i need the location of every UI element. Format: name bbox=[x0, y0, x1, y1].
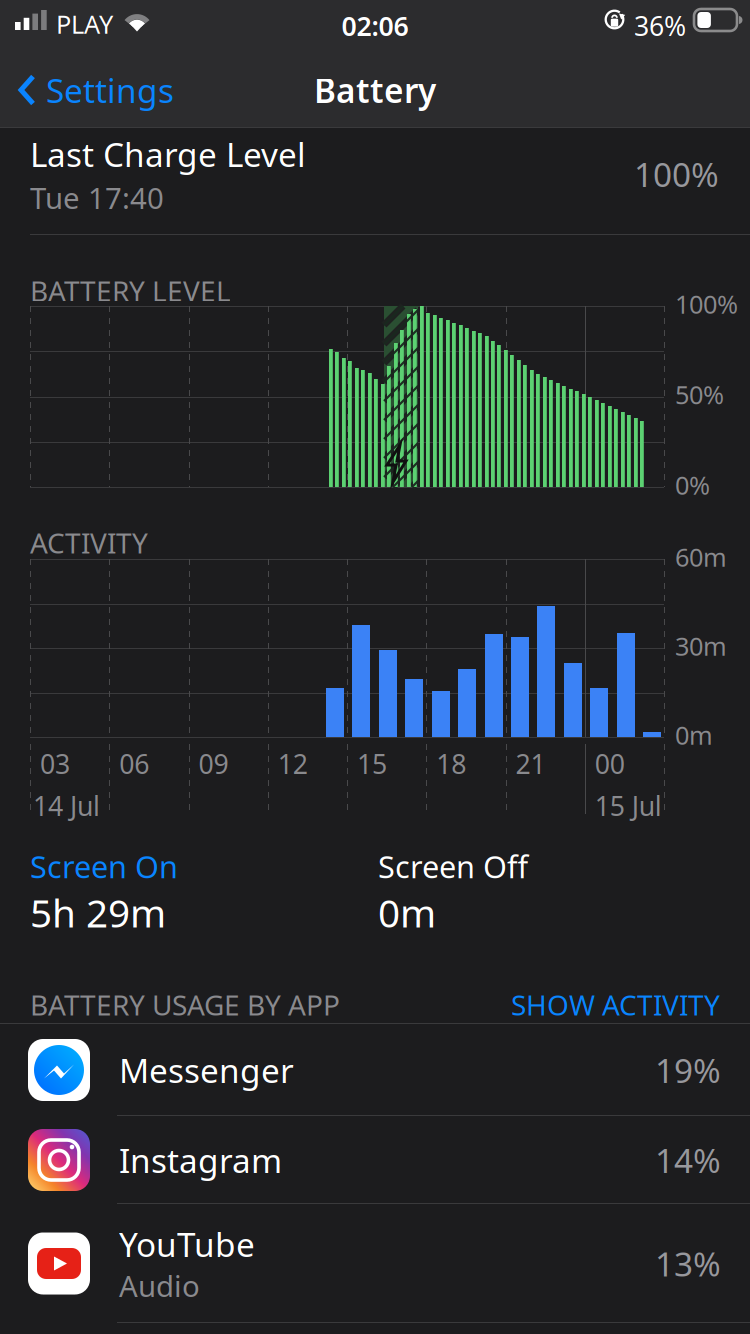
staticText: 50% bbox=[675, 377, 724, 411]
staticText: 06 bbox=[119, 746, 149, 781]
button[interactable]: SHOW ACTIVITY bbox=[511, 986, 720, 1023]
staticText: Screen Off bbox=[378, 846, 528, 887]
button[interactable]: Instagram bbox=[0, 1116, 750, 1204]
staticText: Last Charge Level bbox=[30, 132, 306, 176]
staticText: 15 Jul bbox=[595, 788, 662, 823]
staticText: BATTERY LEVEL bbox=[30, 272, 231, 309]
staticText: BATTERY USAGE BY APP bbox=[30, 986, 340, 1023]
staticText: 21 bbox=[515, 746, 545, 781]
staticText: SHOW ACTIVITY bbox=[511, 986, 720, 1023]
staticText: 36% bbox=[634, 8, 686, 43]
staticText: 100% bbox=[634, 152, 719, 196]
staticText: 13% bbox=[655, 1241, 721, 1286]
staticText: Battery bbox=[314, 68, 436, 112]
staticText: 60m bbox=[675, 540, 727, 574]
staticText: PLAY bbox=[56, 7, 113, 41]
staticText: 00 bbox=[595, 746, 625, 781]
button[interactable]: Screen On bbox=[30, 846, 348, 944]
staticText: 12 bbox=[278, 746, 308, 781]
staticText: 09 bbox=[198, 746, 228, 781]
staticText: 02:06 bbox=[341, 8, 408, 43]
staticText: 14% bbox=[655, 1138, 721, 1182]
button[interactable]: Messenger bbox=[0, 1024, 750, 1116]
button[interactable]: Screen Off bbox=[378, 846, 698, 944]
staticText: 100% bbox=[675, 287, 738, 321]
staticText: Instagram bbox=[119, 1138, 282, 1182]
staticText: Tue 17:40 bbox=[30, 178, 164, 217]
staticText: Settings bbox=[46, 68, 174, 112]
staticText: Screen On bbox=[30, 846, 178, 887]
staticText: 0m bbox=[378, 887, 436, 938]
staticText: 0m bbox=[675, 718, 713, 752]
staticText: YouTube bbox=[119, 1222, 255, 1266]
staticText: ACTIVITY bbox=[30, 524, 148, 561]
staticText: Audio bbox=[119, 1266, 200, 1305]
staticText: 18 bbox=[436, 746, 466, 781]
staticText: 19% bbox=[655, 1048, 721, 1092]
staticText: 30m bbox=[675, 629, 727, 663]
button[interactable]: YouTube bbox=[0, 1204, 750, 1323]
staticText: 03 bbox=[40, 746, 70, 781]
staticText: Messenger bbox=[119, 1048, 294, 1092]
staticText: 5h 29m bbox=[30, 887, 166, 938]
staticText: 15 bbox=[357, 746, 387, 781]
button[interactable]: Settings bbox=[0, 55, 192, 125]
staticText: 14 Jul bbox=[33, 788, 100, 823]
staticText: 0% bbox=[675, 468, 710, 502]
